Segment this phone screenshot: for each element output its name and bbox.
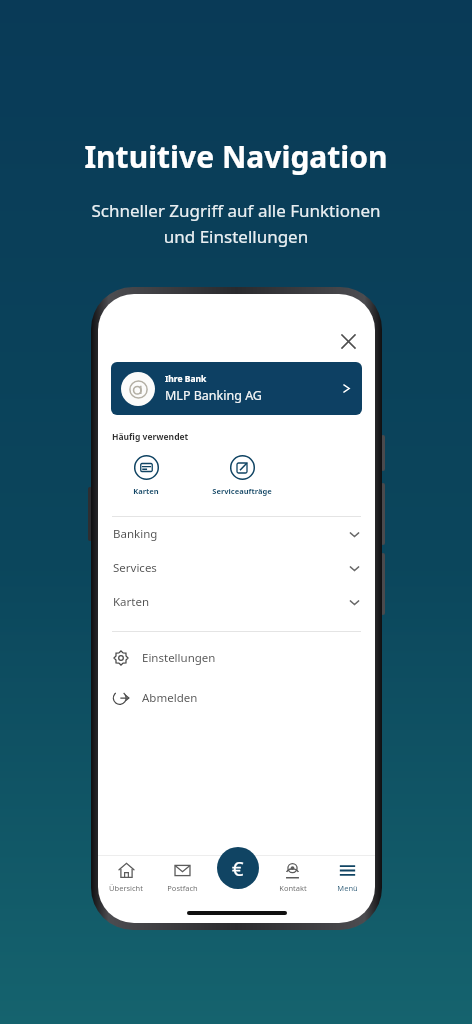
button[interactable]: Zahlungen [217, 847, 259, 889]
staticText: Banking [113, 526, 349, 542]
staticText: Menü [337, 883, 358, 893]
button[interactable]: Kontakt [265, 855, 320, 893]
staticText: Services [113, 560, 349, 576]
staticText: MLP Banking AG [165, 387, 262, 404]
staticText: Postfach [167, 883, 198, 893]
staticText: Häufig verwendet [112, 431, 189, 443]
button[interactable]: Ihre Bank [111, 362, 362, 415]
staticText: Schneller Zugriff auf alle Funktionen un… [91, 199, 381, 248]
staticText: Intuitive Navigation [84, 136, 388, 177]
staticText: € [232, 855, 244, 882]
button[interactable]: Karten [115, 453, 177, 498]
button[interactable]: Schließen [331, 324, 365, 358]
button[interactable]: Postfach [154, 855, 210, 893]
staticText: Ihre Bank [165, 373, 207, 385]
button[interactable]: Karten [98, 585, 375, 619]
staticText: Karten [133, 486, 159, 496]
button[interactable]: Menü [320, 855, 375, 893]
staticText: Karten [113, 594, 349, 610]
button[interactable]: Banking [98, 517, 375, 551]
button[interactable]: Services [98, 551, 375, 585]
staticText: Kontakt [279, 883, 307, 893]
button[interactable]: Serviceaufträge [203, 453, 281, 498]
button[interactable]: Abmelden [98, 678, 375, 718]
staticText: Übersicht [109, 883, 143, 893]
staticText: Serviceaufträge [212, 486, 272, 496]
staticText: Einstellungen [142, 650, 216, 666]
button[interactable]: Einstellungen [98, 638, 375, 678]
button[interactable]: Übersicht [98, 855, 154, 893]
staticText: Abmelden [142, 690, 198, 706]
